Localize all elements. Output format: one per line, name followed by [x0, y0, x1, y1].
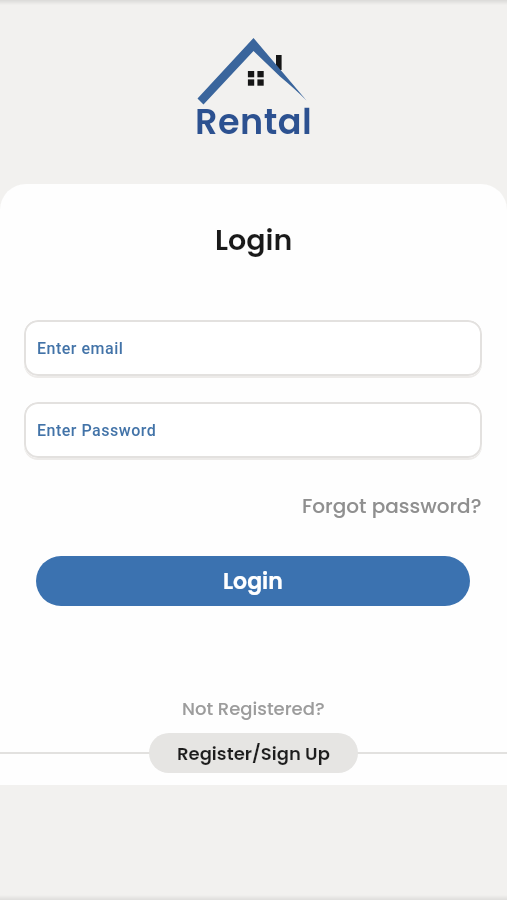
button[interactable]: Enter Password: [24, 402, 482, 458]
staticText: Rental: [195, 97, 313, 146]
staticText: Enter Password: [37, 421, 157, 440]
staticText: Not Registered?: [182, 696, 325, 721]
staticText: Login: [215, 220, 293, 260]
button[interactable]: Login: [36, 556, 470, 606]
staticText: Login: [223, 566, 283, 597]
button[interactable]: Enter email: [24, 320, 482, 376]
staticText: Register/Sign Up: [177, 741, 330, 766]
button[interactable]: Register/Sign Up: [149, 733, 358, 773]
button[interactable]: Forgot password?: [302, 492, 482, 520]
staticText: Enter email: [37, 339, 124, 358]
